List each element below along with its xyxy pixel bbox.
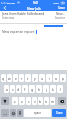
staticText: o bbox=[55, 76, 58, 81]
button[interactable]: l bbox=[57, 85, 63, 93]
staticText: q bbox=[2, 76, 5, 81]
button[interactable]: e bbox=[13, 74, 18, 82]
button[interactable]: y bbox=[32, 74, 38, 82]
button[interactable]: 123 bbox=[1, 109, 9, 117]
button[interactable]: Done bbox=[52, 109, 66, 117]
staticText: s bbox=[12, 87, 14, 92]
button[interactable]: v bbox=[32, 97, 37, 105]
button[interactable]: o bbox=[53, 74, 59, 82]
button[interactable]: Emoji bbox=[10, 109, 16, 117]
staticText: r bbox=[21, 76, 23, 81]
staticText: n bbox=[45, 99, 48, 104]
staticText: v bbox=[34, 99, 36, 104]
staticText: y bbox=[34, 76, 36, 81]
button[interactable]: Dictation bbox=[17, 109, 23, 117]
staticText: w bbox=[8, 76, 11, 81]
button[interactable]: f bbox=[22, 85, 28, 93]
staticText: New... bbox=[44, 12, 65, 16]
button[interactable]: Shift bbox=[1, 97, 9, 105]
staticText: u bbox=[41, 76, 44, 81]
button[interactable]: g bbox=[29, 85, 35, 93]
button[interactable]: n bbox=[44, 97, 49, 105]
staticText: Carrier bbox=[7, 1, 16, 4]
staticText: Inactive bbox=[44, 16, 65, 20]
staticText: Save bbox=[58, 6, 65, 10]
staticText: 123 bbox=[3, 112, 8, 115]
staticText: k bbox=[52, 87, 54, 92]
staticText: c bbox=[28, 99, 30, 104]
staticText: Interview bbox=[2, 16, 15, 20]
button[interactable]: r bbox=[19, 74, 24, 82]
button[interactable]: z bbox=[12, 97, 18, 105]
staticText: b bbox=[39, 99, 42, 104]
button[interactable]: c bbox=[26, 97, 31, 105]
staticText: New expense report bbox=[2, 29, 35, 34]
staticText: a bbox=[6, 87, 8, 92]
button[interactable]: Delete bbox=[58, 97, 66, 105]
button[interactable]: a bbox=[4, 85, 9, 93]
button[interactable]: q bbox=[1, 74, 6, 82]
staticText: z bbox=[14, 99, 16, 104]
button[interactable]: u bbox=[39, 74, 45, 82]
button[interactable]: x bbox=[19, 97, 25, 105]
staticText: p bbox=[62, 76, 65, 81]
staticText: Done bbox=[56, 111, 63, 115]
staticText: g bbox=[31, 87, 34, 92]
staticText: l bbox=[60, 87, 61, 92]
staticText: New Job bbox=[27, 6, 41, 11]
button[interactable]: d bbox=[16, 85, 21, 93]
button[interactable]: s bbox=[10, 85, 15, 93]
staticText: d bbox=[17, 87, 20, 92]
staticText: 100% bbox=[53, 1, 60, 4]
staticText: i bbox=[49, 76, 50, 81]
button[interactable]: m bbox=[50, 97, 55, 105]
staticText: m bbox=[51, 99, 55, 104]
staticText: Jens from Kable Sollerbrand bbox=[2, 12, 45, 16]
staticText: x bbox=[21, 99, 23, 104]
button[interactable]: b bbox=[38, 97, 43, 105]
button[interactable]: p bbox=[60, 74, 66, 82]
button[interactable]: j bbox=[43, 85, 49, 93]
staticText: e bbox=[15, 76, 17, 81]
button[interactable]: space bbox=[24, 109, 51, 117]
button[interactable]: h bbox=[36, 85, 42, 93]
staticText: space bbox=[34, 111, 42, 115]
button[interactable]: Save bbox=[56, 5, 67, 11]
staticText: j bbox=[46, 87, 47, 92]
button[interactable]: k bbox=[50, 85, 56, 93]
button[interactable]: t bbox=[25, 74, 31, 82]
button[interactable]: w bbox=[7, 74, 12, 82]
staticText: t bbox=[27, 76, 29, 81]
button[interactable]: Back bbox=[0, 5, 9, 11]
button[interactable]: Jens from Kable Sollerbrand bbox=[2, 12, 45, 16]
staticText: h bbox=[38, 87, 41, 92]
button[interactable]: i bbox=[46, 74, 52, 82]
staticText: f bbox=[24, 87, 26, 92]
staticText: 9:41 bbox=[33, 1, 39, 5]
